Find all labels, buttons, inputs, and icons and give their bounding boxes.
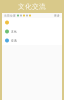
staticText: 文化 — [11, 30, 17, 33]
button[interactable]: 文化 — [2, 27, 62, 36]
button[interactable] — [2, 18, 62, 27]
button[interactable]: 交流 — [2, 36, 62, 45]
staticText: 交流 — [11, 39, 17, 42]
staticText: 文化交流 — [18, 2, 46, 11]
staticText: 更多 — [54, 14, 60, 17]
staticText: 当前位置 — [4, 14, 16, 17]
